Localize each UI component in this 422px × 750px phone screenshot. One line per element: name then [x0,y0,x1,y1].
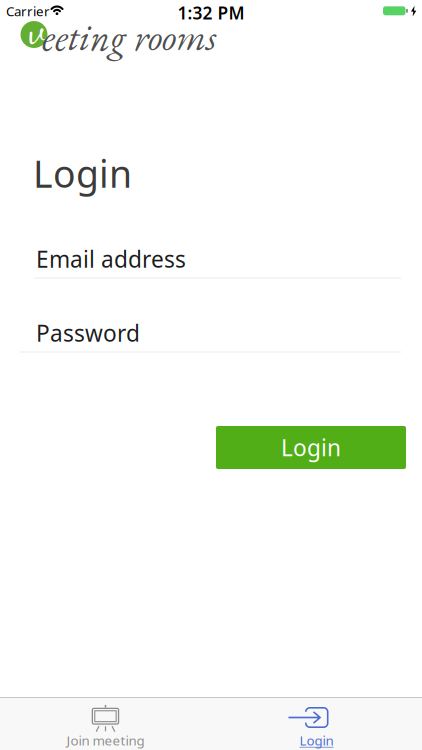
button[interactable]: Password [20,318,422,352]
staticText: 1:32 PM [177,1,244,24]
staticText: Login [299,731,333,749]
staticText: eeting rooms [42,12,216,62]
staticText: Password [36,318,140,348]
button[interactable]: Email address [20,244,422,278]
button[interactable]: Login [211,697,422,750]
button[interactable]: Login [216,426,406,469]
staticText: Email address [36,244,186,274]
staticText: Login [281,432,341,462]
button[interactable]: Join meeting [0,697,211,750]
staticText: v [29,3,46,54]
staticText: Login [33,148,132,198]
staticText: Join meeting [66,731,144,749]
staticText: Carrier [6,2,50,20]
